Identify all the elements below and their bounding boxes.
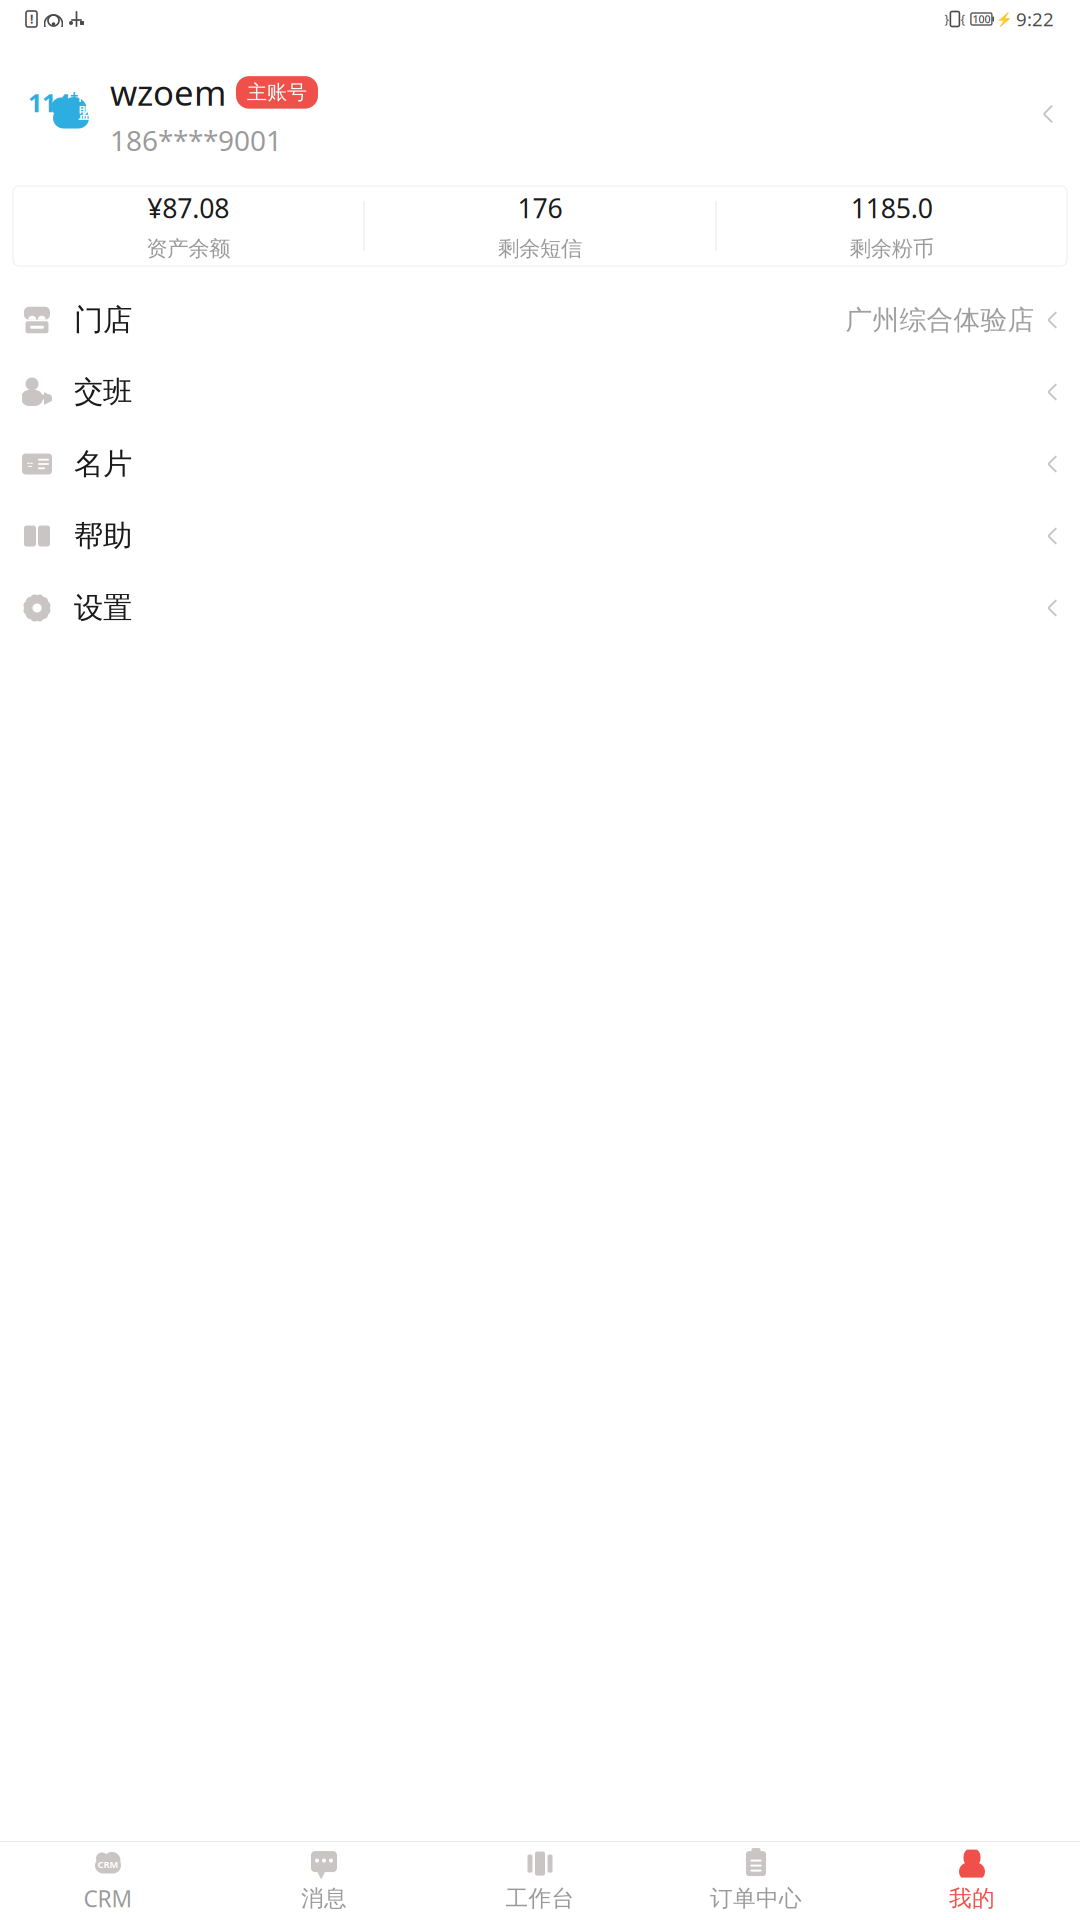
staticText: { (960, 11, 965, 27)
staticText: 176 (517, 190, 562, 226)
button[interactable]: 订单中心 (648, 1840, 864, 1920)
staticText: + (70, 86, 78, 105)
button[interactable]: 114 (0, 64, 1080, 164)
button[interactable]: 工作台 (432, 1840, 648, 1920)
staticText: 帮助 (74, 518, 132, 554)
staticText: 工作台 (505, 1885, 574, 1912)
button[interactable]: CRM (0, 1838, 216, 1920)
button[interactable]: 帮助 (0, 500, 1080, 572)
staticText: 186****9001 (110, 121, 282, 159)
button[interactable]: ▶ (0, 356, 1080, 428)
staticText: 主账号 (247, 80, 307, 105)
staticText: ▼ (315, 1864, 326, 1881)
button[interactable]: 门店 (0, 284, 1080, 356)
staticText: 消息 (301, 1885, 347, 1912)
staticText: 9:22 (1016, 7, 1054, 31)
staticText: 剩余粉币 (850, 236, 934, 262)
staticText: ⚡ (996, 11, 1013, 27)
staticText: ¥87.08 (147, 190, 229, 226)
staticText: } (944, 11, 949, 27)
staticText: wzoem (110, 69, 226, 115)
staticText: 订单中心 (710, 1885, 802, 1912)
staticText: ! (30, 11, 33, 27)
staticText: 我的 (949, 1885, 995, 1912)
staticText: CRM (97, 1858, 118, 1871)
staticText: ▶ (43, 387, 56, 407)
staticText: 1185.0 (851, 190, 933, 226)
button[interactable]: 名片 (0, 428, 1080, 500)
staticText: 交班 (74, 374, 132, 410)
button[interactable]: 我的 (864, 1840, 1080, 1920)
staticText: 广州综合体验店 (846, 304, 1035, 336)
staticText: 名片 (74, 446, 132, 482)
button[interactable]: 设置 (0, 572, 1080, 644)
staticText: CRM (83, 1883, 132, 1913)
staticText: 门店 (74, 302, 132, 338)
staticText: 资产余额 (146, 236, 230, 262)
staticText: 剩余短信 (498, 236, 582, 262)
staticText: 设置 (74, 590, 132, 626)
staticText: 114 (28, 86, 70, 119)
staticText: 100 (972, 12, 990, 26)
button[interactable]: ▼ (216, 1840, 432, 1920)
staticText: 商盟 (78, 86, 93, 122)
